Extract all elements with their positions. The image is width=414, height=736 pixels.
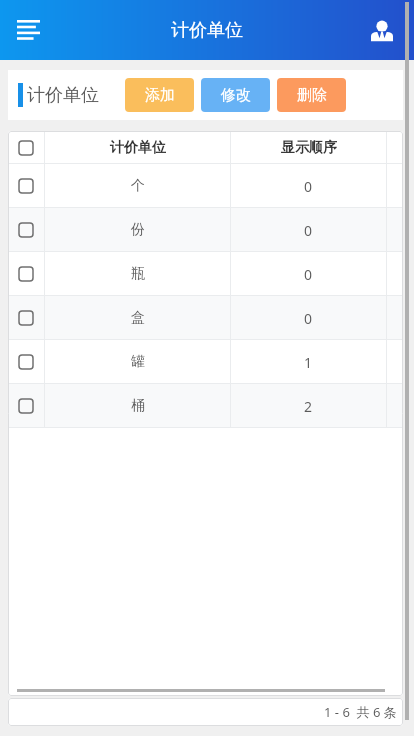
staticText: 修改 xyxy=(221,86,251,105)
button[interactable]: 罐 xyxy=(8,340,403,384)
staticText: 添加 xyxy=(145,86,175,105)
button[interactable]: 桶 xyxy=(8,384,403,428)
staticText: 计价单位 xyxy=(171,19,243,42)
button[interactable]: 删除 xyxy=(277,78,346,112)
staticText: 瓶 xyxy=(131,265,145,283)
staticText: 1 - 6 共 6 条 xyxy=(324,703,397,721)
staticText: 罐 xyxy=(131,353,145,371)
staticText: 计价单位 xyxy=(27,84,99,107)
staticText: 1 xyxy=(304,353,313,372)
staticText: 个 xyxy=(131,177,145,195)
staticText: 0 xyxy=(304,221,313,240)
button[interactable]: Account xyxy=(362,10,402,50)
staticText: 2 xyxy=(304,397,313,416)
staticText: 删除 xyxy=(297,86,327,105)
button[interactable]: Menu xyxy=(6,8,50,52)
button[interactable]: 盒 xyxy=(8,296,403,340)
button[interactable]: 瓶 xyxy=(8,252,403,296)
staticText: 份 xyxy=(131,221,145,239)
button[interactable]: 份 xyxy=(8,208,403,252)
staticText: 显示顺序 xyxy=(281,139,337,157)
staticText: 0 xyxy=(304,177,313,196)
staticText: 0 xyxy=(304,265,313,284)
staticText: 盒 xyxy=(131,309,145,327)
staticText: 桶 xyxy=(131,397,145,415)
button[interactable]: 个 xyxy=(8,164,403,208)
button[interactable]: 添加 xyxy=(125,78,194,112)
staticText: 0 xyxy=(304,309,313,328)
button[interactable]: 修改 xyxy=(201,78,270,112)
staticText: 计价单位 xyxy=(110,139,166,157)
